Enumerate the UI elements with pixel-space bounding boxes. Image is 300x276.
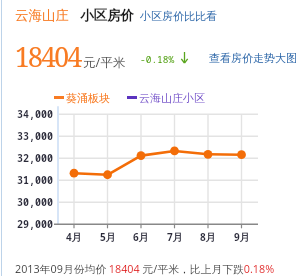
staticText: 元/平米	[83, 54, 126, 71]
staticText: 查看房价走势大图	[209, 51, 297, 65]
staticText: 34,000	[17, 107, 53, 121]
staticText: 小区房价比比看	[140, 9, 217, 23]
staticText: 云海山庄	[15, 7, 69, 24]
staticText: 18404	[15, 39, 81, 75]
staticText: 葵涌板块	[66, 91, 110, 105]
staticText: 2013年09月份均价 18404 元/平米，比上月下跌0.18%	[15, 261, 275, 276]
staticText: 29,000	[17, 217, 53, 231]
staticText: 8月	[200, 230, 216, 244]
other: Price down	[180, 52, 189, 63]
staticText: 9月	[234, 230, 250, 244]
staticText: 5月	[100, 230, 116, 244]
staticText: 小区房价	[80, 7, 134, 24]
staticText: 7月	[167, 230, 183, 244]
button[interactable]: 查看房价走势大图	[209, 51, 297, 65]
staticText: 6月	[133, 230, 149, 244]
staticText: 33,000	[17, 129, 53, 143]
staticText: 30,000	[17, 195, 53, 209]
staticText: -0.18%	[140, 53, 175, 66]
staticText: 32,000	[17, 151, 53, 165]
staticText: 31,000	[17, 173, 53, 187]
staticText: 4月	[66, 230, 82, 244]
staticText: 云海山庄小区	[139, 91, 205, 105]
button[interactable]: 小区房价比比看	[140, 9, 217, 23]
